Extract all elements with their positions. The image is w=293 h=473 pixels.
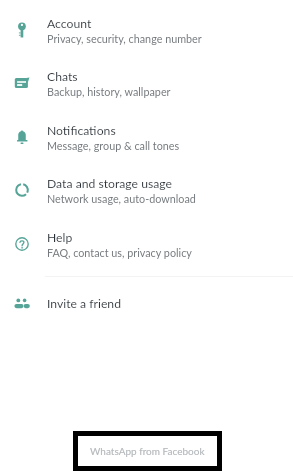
button[interactable]: WhatsApp from Facebook [73,431,222,471]
staticText: Privacy, security, change number [47,32,202,45]
staticText: FAQ, contact us, privacy policy [47,246,192,259]
staticText: Help [47,230,73,245]
staticText: Notifications [47,123,116,138]
staticText: Data and storage usage [47,176,172,191]
staticText: Invite a friend [47,296,121,311]
button[interactable]: Chats [0,56,293,109]
button[interactable]: Invite a friend [0,276,293,329]
staticText: Account [47,16,92,31]
button[interactable]: Notifications [0,110,293,163]
staticText: Message, group & call tones [47,139,180,152]
button[interactable]: Account [0,3,293,56]
staticText: Network usage, auto-download [47,192,196,205]
staticText: Chats [47,69,78,84]
button[interactable]: Help [0,217,293,270]
staticText: WhatsApp from Facebook [90,445,205,457]
button[interactable]: Data and storage usage [0,163,293,216]
staticText: Backup, history, wallpaper [47,85,171,98]
